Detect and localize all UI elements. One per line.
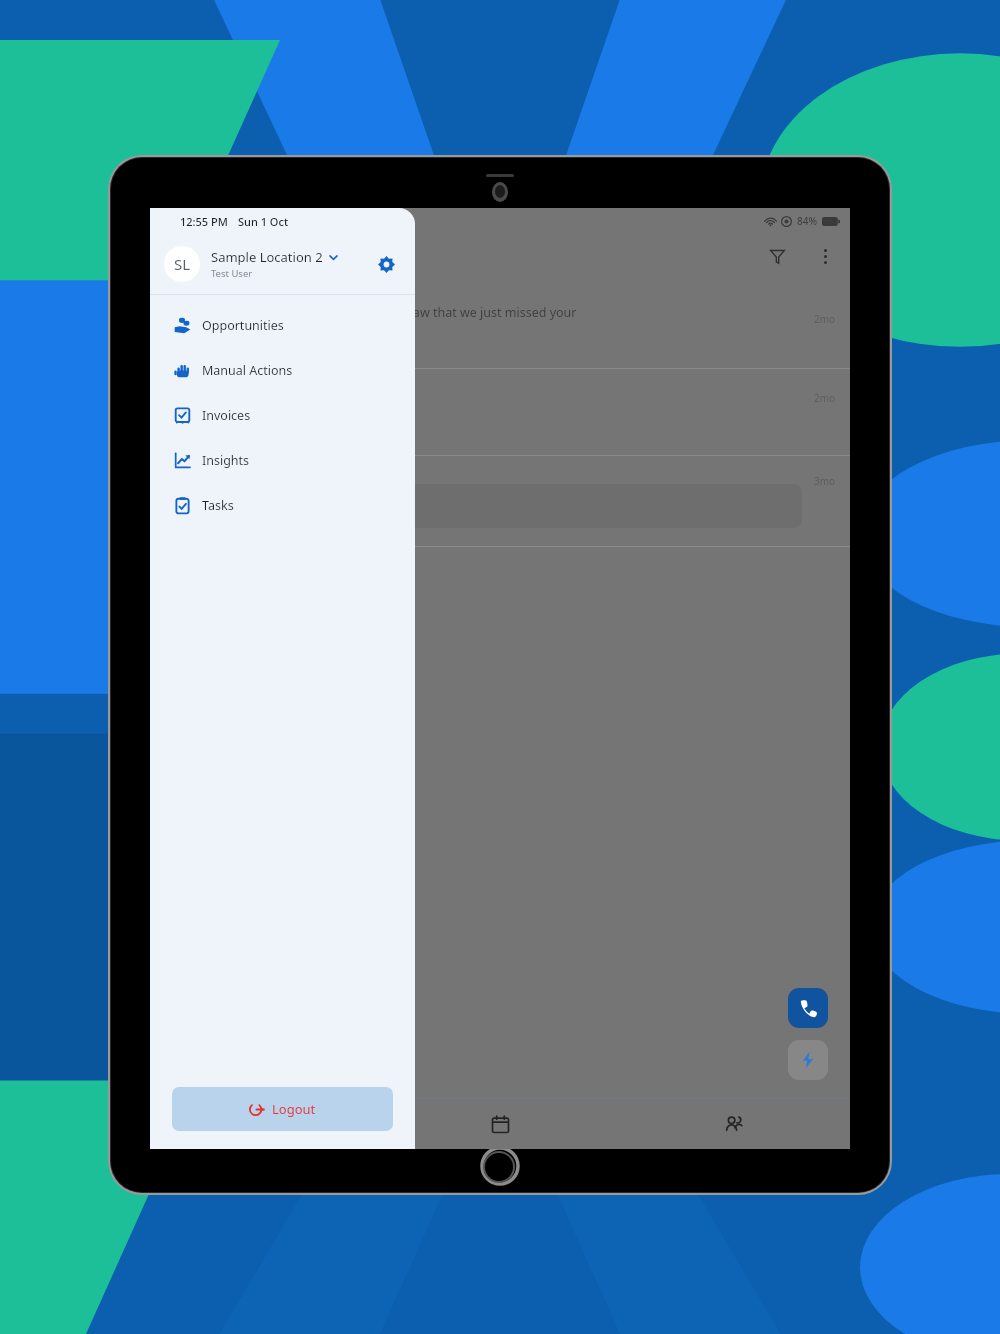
staticText: 2mo [814,312,836,326]
button[interactable]: 3mo [150,456,850,546]
button[interactable]: message : Hi [150,369,850,455]
staticText: 2mo [814,391,836,405]
button[interactable]: Calendar [384,1099,617,1149]
staticText: Opportunities [202,317,284,334]
staticText: SL [174,254,191,274]
button[interactable]: Contacts [617,1099,850,1149]
staticText: Logout [272,1100,316,1118]
staticText: Manual Actions [202,362,293,379]
button[interactable]: Filter [764,243,790,269]
button[interactable]: Manual Actions [150,348,415,393]
staticText: Test User [211,267,253,280]
button[interactable]: More options [812,243,838,269]
button[interactable]: Tasks [150,483,415,528]
button[interactable]: Invoices [150,393,415,438]
staticText: Invoices [202,407,251,424]
button[interactable]: Settings [371,249,401,279]
button[interactable]: message : Hi this is Product @ HighLevel… [150,290,850,368]
button[interactable]: Call [788,988,828,1028]
button[interactable]: SL [150,234,415,294]
staticText: Insights [202,452,250,469]
staticText: & Zap [156,412,191,429]
button[interactable]: Logout [172,1087,393,1131]
staticText: 3mo [814,474,836,488]
staticText: 12:55 PM [180,214,228,229]
button[interactable]: Insights [150,438,415,483]
staticText: message : Hi this is Product @ HighLevel… [156,304,577,321]
staticText: Sample Location 2 [211,248,323,266]
staticText: Sun 1 Oct [238,214,289,229]
button[interactable]: Quick action [788,1040,828,1080]
staticText: Tasks [202,497,234,514]
button[interactable]: Opportunities [150,303,415,348]
staticText: 84% [797,214,817,228]
button[interactable]: Favorites [150,1099,384,1149]
